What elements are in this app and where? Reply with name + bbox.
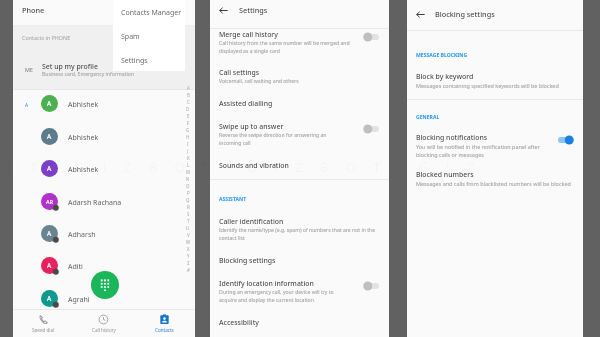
- staticText: AR: [46, 198, 54, 206]
- staticText: Messages containing specified keywords w…: [416, 82, 559, 89]
- button[interactable]: Open dial pad: [91, 271, 119, 299]
- staticText: A: [25, 102, 29, 109]
- staticText: K: [187, 155, 190, 161]
- staticText: U: [186, 225, 190, 231]
- button[interactable]: Toggle on: [557, 135, 574, 145]
- button[interactable]: Spam: [121, 32, 140, 42]
- staticText: Abhishek: [68, 165, 99, 175]
- staticText: F: [187, 120, 190, 126]
- staticText: GENERAL: [416, 114, 440, 121]
- staticText: Messages and calls from blacklisted numb…: [416, 180, 571, 187]
- button[interactable]: Identify location information: [210, 279, 389, 308]
- staticText: Blocking settings: [219, 256, 276, 265]
- staticText: Reverse the swipe direction for answerin…: [219, 132, 327, 139]
- staticText: S: [187, 211, 190, 217]
- staticText: Adharsh: [68, 230, 96, 240]
- button[interactable]: A: [13, 89, 195, 121]
- button[interactable]: Sounds and vibration: [210, 161, 389, 173]
- staticText: MESSAGE BLOCKING: [416, 52, 468, 59]
- button[interactable]: AR: [13, 187, 195, 219]
- button[interactable]: Contacts Manager: [121, 8, 182, 18]
- staticText: C: [187, 99, 190, 105]
- button[interactable]: Accessibility: [210, 318, 389, 330]
- staticText: A: [187, 85, 190, 91]
- staticText: E: [187, 113, 190, 119]
- staticText: Identify location information: [219, 279, 314, 288]
- button[interactable]: Toggle off: [363, 124, 380, 134]
- staticText: Voicemail, call waiting and others: [219, 78, 299, 85]
- staticText: Call settings: [219, 68, 260, 77]
- staticText: Block by keyword: [416, 72, 474, 81]
- button[interactable]: A: [13, 251, 195, 283]
- staticText: Identify the name/type (e.g. spam) of nu…: [219, 227, 376, 234]
- staticText: Accessibility: [219, 318, 259, 327]
- button[interactable]: Swipe up to answer: [210, 122, 389, 151]
- button[interactable]: A: [13, 154, 195, 186]
- staticText: Contacts: [155, 327, 174, 333]
- staticText: N: [186, 176, 190, 182]
- button[interactable]: Back: [412, 6, 428, 22]
- staticText: #: [187, 267, 190, 273]
- button[interactable]: A: [13, 219, 195, 251]
- staticText: T: [187, 218, 190, 224]
- staticText: I: [187, 141, 189, 147]
- button[interactable]: Blocking notifications: [407, 133, 583, 162]
- staticText: A: [47, 164, 52, 173]
- staticText: X: [187, 246, 190, 252]
- staticText: Abhishek: [68, 100, 99, 110]
- staticText: You will be notified in the notification…: [416, 143, 540, 150]
- staticText: Settings: [239, 5, 268, 15]
- button[interactable]: Settings: [121, 56, 148, 66]
- staticText: Merge call history: [219, 30, 278, 39]
- staticText: During an emergency call, your device wi…: [219, 289, 334, 296]
- staticText: blocking calls or messages: [416, 151, 484, 158]
- staticText: Swipe up to answer: [219, 122, 284, 131]
- staticText: P: [187, 190, 190, 196]
- button[interactable]: Blocking settings: [210, 256, 389, 268]
- staticText: Set up my profile: [42, 62, 98, 71]
- button[interactable]: Caller identification: [210, 217, 389, 246]
- staticText: displayed as a single card: [219, 48, 280, 55]
- staticText: A: [47, 294, 52, 303]
- staticText: Abhishek: [68, 133, 99, 143]
- staticText: A: [47, 229, 52, 238]
- button[interactable]: ME: [13, 49, 195, 89]
- button[interactable]: Contacts: [134, 309, 195, 337]
- staticText: L: [187, 162, 190, 168]
- staticText: Contacts in PHONE: [22, 34, 71, 41]
- staticText: Blocking settings: [435, 9, 495, 19]
- staticText: G: [186, 127, 190, 133]
- staticText: B: [187, 92, 190, 98]
- staticText: contact list: [219, 235, 245, 242]
- button[interactable]: Call settings: [210, 68, 389, 88]
- button[interactable]: Speed dial: [13, 309, 73, 337]
- button[interactable]: Toggle off: [363, 32, 380, 42]
- button[interactable]: Merge call history: [210, 30, 389, 59]
- staticText: Blocking notifications: [416, 133, 488, 142]
- staticText: J: [187, 148, 189, 154]
- staticText: R: [187, 204, 190, 210]
- button[interactable]: A: [13, 122, 195, 154]
- button[interactable]: Blocked numbers: [407, 170, 583, 190]
- staticText: Call history: [92, 327, 116, 333]
- staticText: Q: [186, 197, 190, 203]
- staticText: H: [186, 134, 190, 140]
- staticText: Assisted dialling: [219, 99, 273, 108]
- button[interactable]: Back: [215, 2, 231, 18]
- staticText: A: [47, 261, 52, 270]
- staticText: Phone: [22, 5, 45, 15]
- staticText: Y: [187, 253, 190, 259]
- staticText: Sounds and vibration: [219, 161, 289, 170]
- button[interactable]: A: [13, 284, 195, 316]
- staticText: V: [187, 232, 190, 238]
- staticText: incoming call: [219, 140, 251, 147]
- staticText: Adarsh Rachana: [68, 198, 122, 208]
- button[interactable]: Toggle off: [363, 281, 380, 291]
- staticText: acquire and display the current location: [219, 297, 314, 304]
- staticText: Speed dial: [32, 327, 55, 333]
- staticText: Aditi: [68, 262, 83, 272]
- button[interactable]: Block by keyword: [407, 72, 583, 92]
- button[interactable]: Assisted dialling: [210, 99, 389, 111]
- staticText: Caller identification: [219, 217, 284, 226]
- button[interactable]: Call history: [73, 309, 134, 337]
